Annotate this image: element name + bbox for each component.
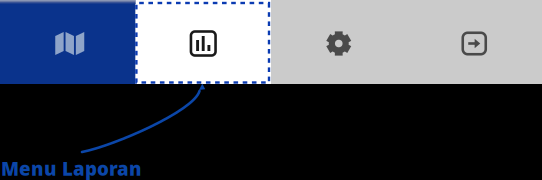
staticText: Menu Laporan	[1, 156, 142, 180]
button[interactable]: Pengaturan	[271, 0, 406, 84]
button[interactable]: Menu Laporan	[135, 0, 271, 84]
button[interactable]: Peta	[0, 0, 135, 84]
button[interactable]: Keluar	[406, 0, 542, 84]
